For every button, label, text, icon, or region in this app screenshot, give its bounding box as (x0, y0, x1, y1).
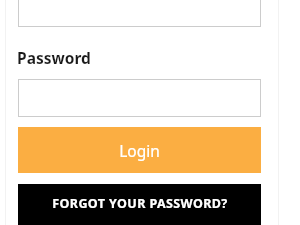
staticText: FORGOT YOUR PASSWORD? (52, 195, 228, 212)
staticText: Login (119, 140, 160, 161)
button[interactable]: FORGOT YOUR PASSWORD? (18, 184, 261, 225)
button[interactable] (18, 0, 261, 27)
staticText: Password (17, 47, 91, 66)
button[interactable] (18, 79, 261, 117)
button[interactable]: Login (18, 127, 261, 173)
